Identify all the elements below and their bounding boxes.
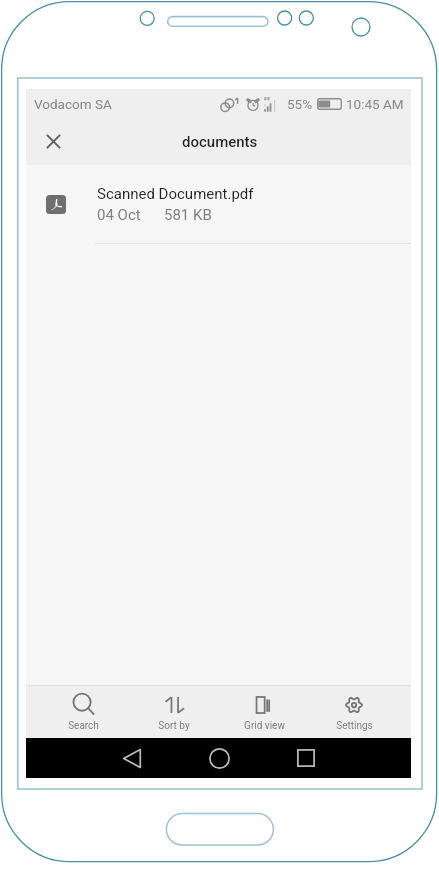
button[interactable]: Back: [101, 738, 163, 778]
button[interactable]: Grid view: [219, 686, 309, 738]
staticText: Scanned Document.pdf: [97, 185, 254, 203]
button[interactable]: Recents: [275, 738, 337, 778]
staticText: Search: [68, 720, 99, 732]
staticText: 10:45 AM: [346, 96, 404, 112]
button[interactable]: Sort by: [129, 686, 219, 738]
staticText: 55%: [287, 96, 313, 112]
button[interactable]: Close: [35, 123, 72, 160]
staticText: Grid view: [244, 720, 285, 732]
button[interactable]: Settings: [309, 686, 399, 738]
staticText: Sort by: [158, 720, 190, 732]
button[interactable]: Search: [38, 686, 129, 738]
button[interactable]: Home: [188, 738, 250, 778]
staticText: documents: [182, 133, 258, 151]
staticText: 581 KB: [164, 206, 212, 224]
button[interactable]: Scanned Document.pdf: [26, 165, 411, 244]
staticText: Vodacom SA: [34, 96, 112, 112]
staticText: 04 Oct: [97, 206, 141, 224]
staticText: Settings: [336, 720, 373, 732]
